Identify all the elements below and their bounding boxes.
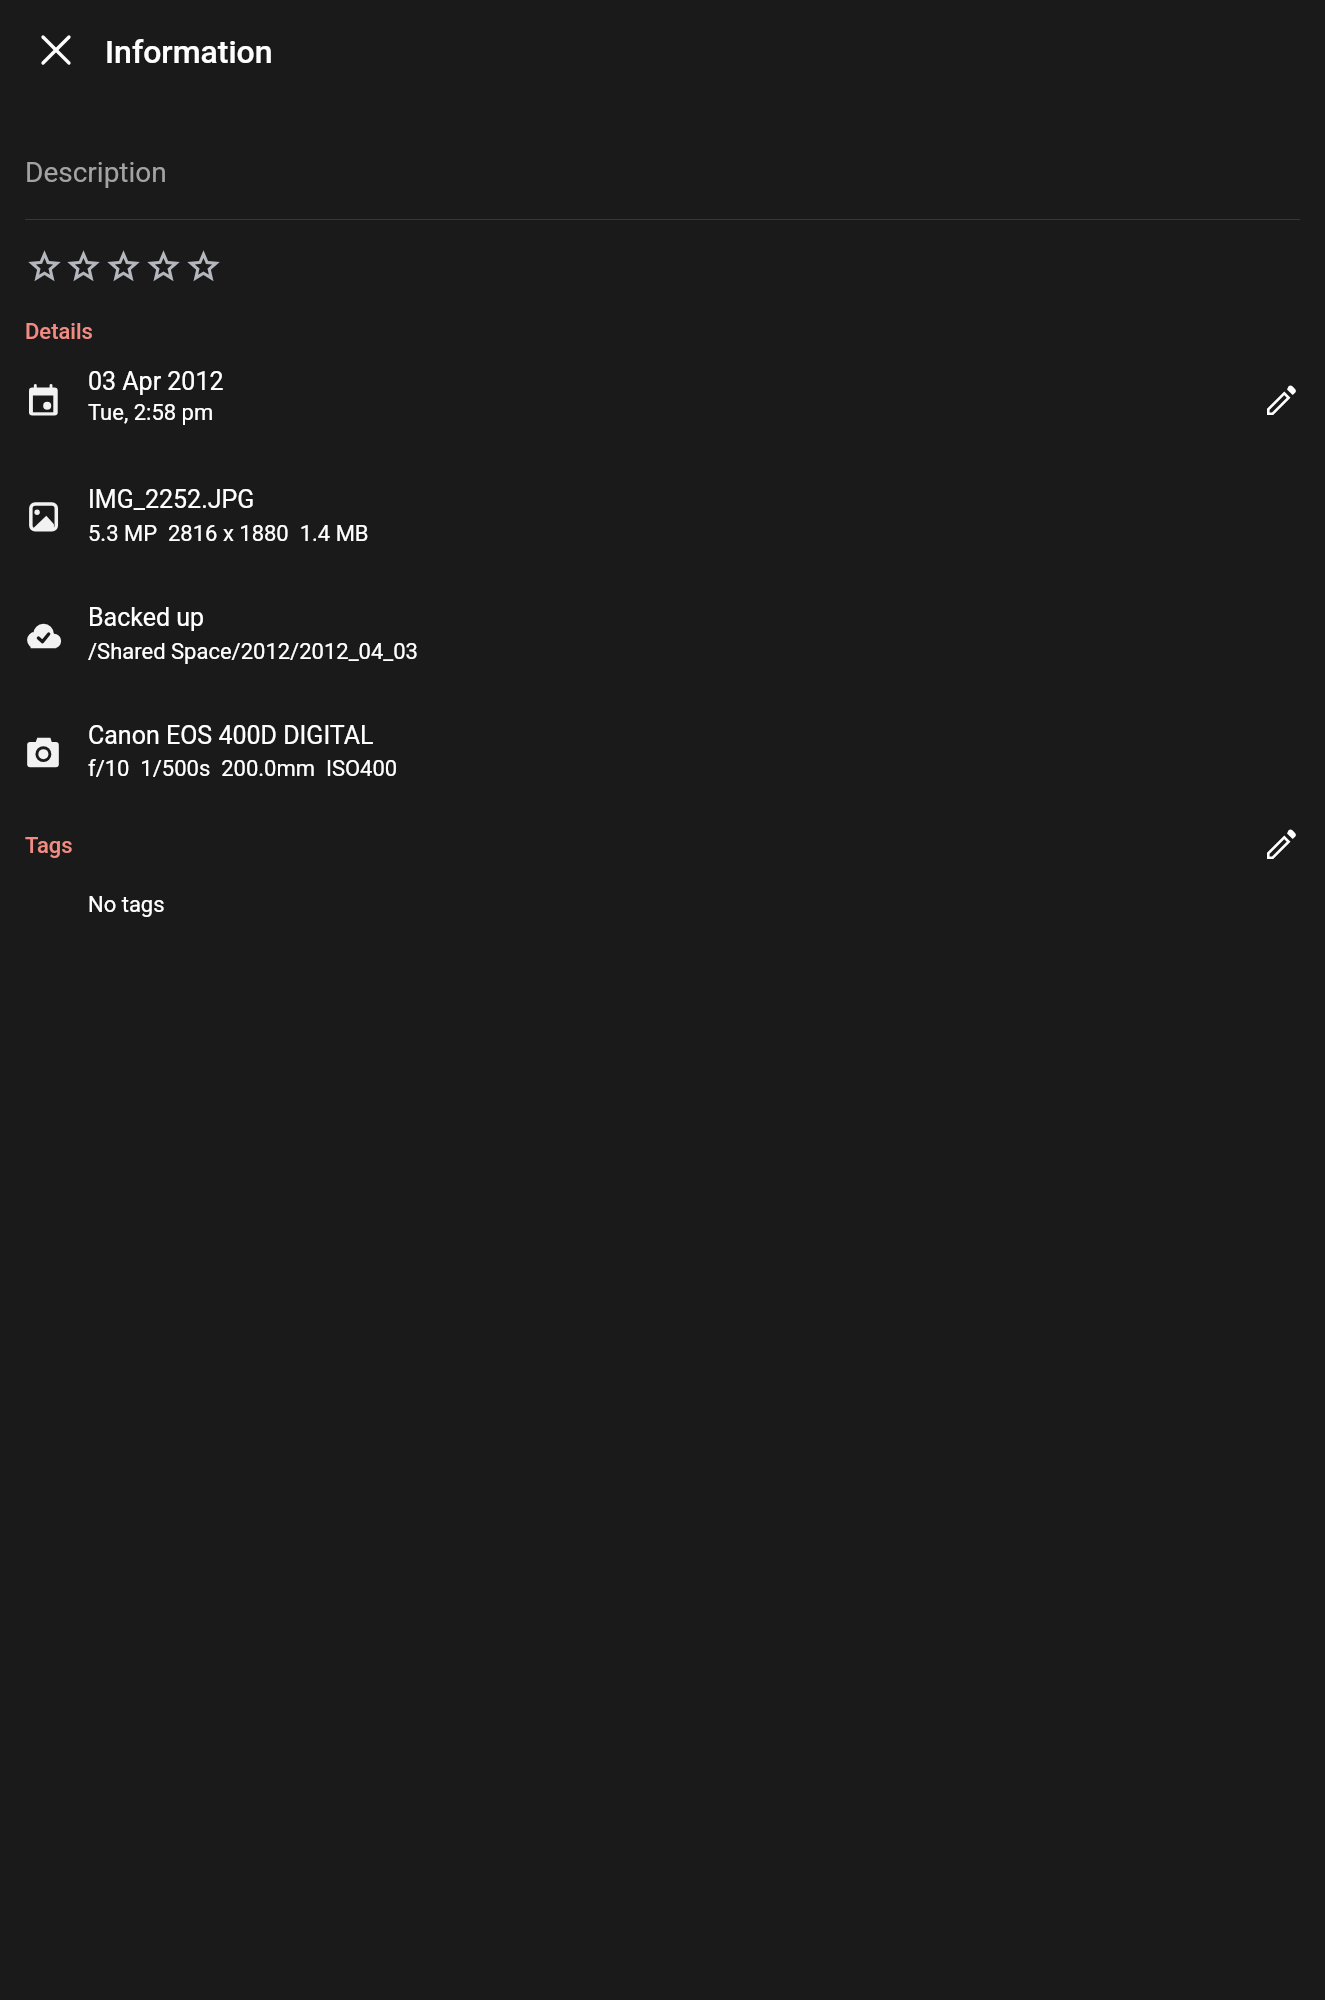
staticText: f/10 1/500s 200.0mm ISO400 xyxy=(88,756,398,782)
staticText: Canon EOS 400D DIGITAL xyxy=(88,721,374,750)
button[interactable]: Edit tags xyxy=(1246,808,1317,879)
button[interactable]: Rate 3 star xyxy=(104,247,143,286)
staticText: /Shared Space/2012/2012_04_03 xyxy=(88,639,418,665)
staticText: No tags xyxy=(88,892,165,918)
staticText: Information xyxy=(105,33,273,71)
staticText: Tue, 2:58 pm xyxy=(88,400,214,426)
button[interactable]: Backed up xyxy=(0,576,1325,688)
button[interactable]: Rate 2 star xyxy=(64,247,103,286)
button[interactable]: Rate 1 star xyxy=(25,247,64,286)
button[interactable]: Rate 4 star xyxy=(144,247,183,286)
button[interactable]: 03 Apr 2012 xyxy=(0,341,1325,453)
staticText: Description xyxy=(25,156,167,189)
button[interactable]: Edit date xyxy=(1246,364,1317,435)
staticText: 5.3 MP 2816 x 1880 1.4 MB xyxy=(88,521,369,547)
button[interactable]: No tags xyxy=(0,876,1325,934)
button[interactable]: Rate 5 star xyxy=(184,247,223,286)
button[interactable]: Description xyxy=(0,128,1325,221)
button[interactable]: Close xyxy=(20,14,92,86)
staticText: Tags xyxy=(25,833,73,859)
staticText: IMG_2252.JPG xyxy=(88,485,255,514)
button[interactable]: IMG_2252.JPG xyxy=(0,458,1325,570)
staticText: Details xyxy=(25,319,93,345)
staticText: 03 Apr 2012 xyxy=(88,367,224,396)
staticText: Backed up xyxy=(88,603,205,632)
button[interactable]: Canon EOS 400D DIGITAL xyxy=(0,695,1325,807)
